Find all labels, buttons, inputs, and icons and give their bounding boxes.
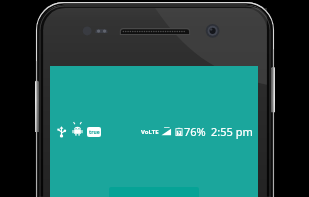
button[interactable]: USB debugging (71, 125, 84, 138)
other: Battery charging 76 percent (175, 126, 183, 138)
staticText: 76% (184, 124, 206, 139)
button[interactable]: Truecaller (87, 127, 101, 137)
staticText: 2:55 pm (211, 124, 253, 139)
other: Signal strength (160, 126, 172, 138)
button[interactable]: USB connected (55, 125, 68, 138)
staticText: VoLTE (141, 128, 159, 136)
staticText: true (89, 129, 100, 136)
